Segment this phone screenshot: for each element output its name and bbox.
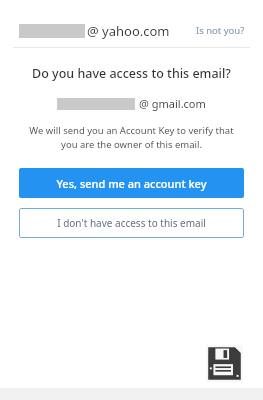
button[interactable]: Is not you?	[194, 20, 247, 41]
button[interactable]: I don't have access to this email	[19, 208, 244, 238]
staticText: @ gmail.com	[139, 96, 206, 111]
staticText: Yes, send me an account key	[56, 176, 207, 191]
staticText: Is not you?	[196, 24, 245, 37]
button[interactable]: Yes, send me an account key	[19, 168, 244, 198]
staticText: Do you have access to this email?	[32, 65, 231, 82]
button[interactable]: Save	[205, 344, 243, 382]
staticText: @ yahoo.com	[87, 22, 170, 40]
staticText: We will send you an Account Key to verif…	[21, 124, 242, 151]
staticText: I don't have access to this email	[57, 216, 206, 230]
